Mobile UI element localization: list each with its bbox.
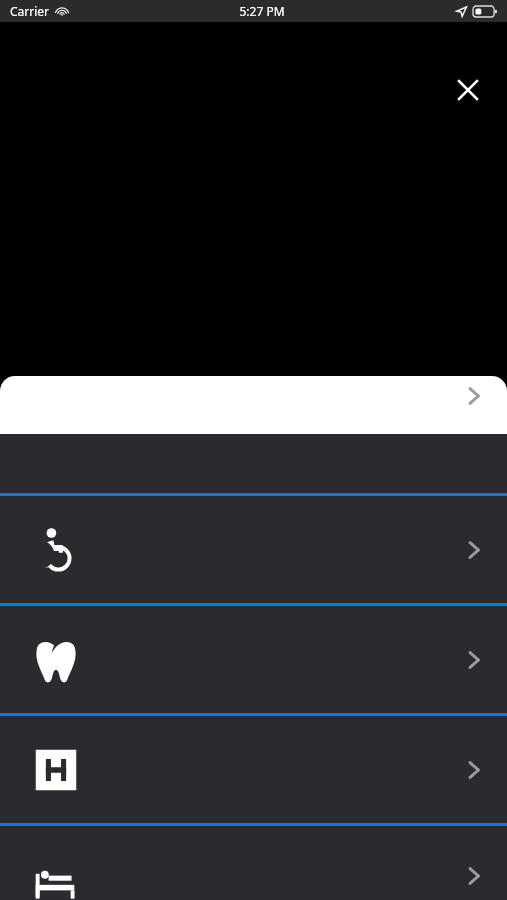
- staticText: 5:27 PM: [239, 3, 285, 19]
- button[interactable]: Close: [446, 68, 490, 112]
- button[interactable]: [0, 826, 507, 900]
- staticText: Carrier: [10, 3, 50, 19]
- button[interactable]: Hospital: [0, 716, 507, 823]
- button[interactable]: Accessibility: [0, 496, 507, 603]
- button[interactable]: Dental: [0, 606, 507, 713]
